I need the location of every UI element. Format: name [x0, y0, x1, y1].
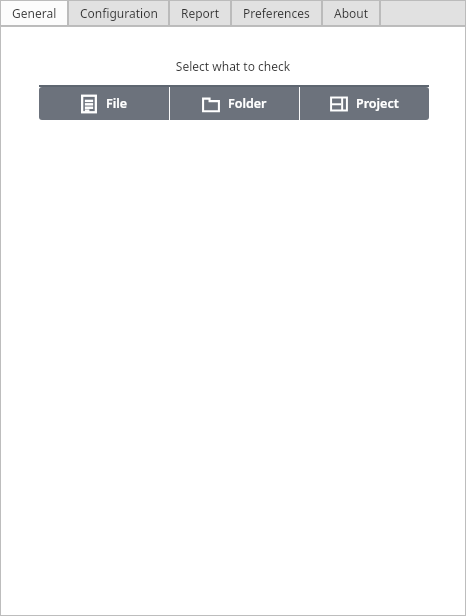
staticText: Preferences: [243, 5, 310, 21]
staticText: Report: [181, 5, 220, 21]
button[interactable]: Folder: [170, 87, 299, 120]
staticText: Folder: [228, 95, 267, 112]
other: Project: [330, 95, 348, 113]
button[interactable]: Report: [169, 0, 231, 26]
staticText: File: [106, 95, 128, 112]
button[interactable]: About: [322, 0, 380, 26]
button[interactable]: Preferences: [231, 0, 322, 26]
staticText: Project: [356, 95, 399, 112]
staticText: About: [334, 5, 369, 21]
button[interactable]: General: [0, 0, 68, 26]
staticText: Configuration: [80, 5, 158, 21]
staticText: General: [12, 5, 57, 21]
other: Folder: [202, 95, 220, 113]
button[interactable]: Project: [300, 87, 429, 120]
other: File: [80, 95, 98, 113]
button[interactable]: Configuration: [68, 0, 169, 26]
staticText: Select what to check: [0, 58, 466, 74]
button[interactable]: File: [39, 87, 169, 120]
